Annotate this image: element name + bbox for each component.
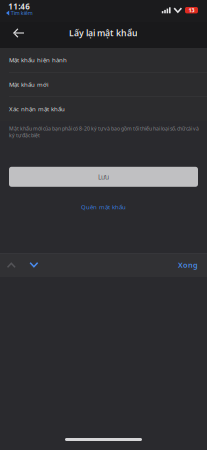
staticText: Lưu [98, 172, 109, 181]
button[interactable]: Previous field [0, 254, 23, 276]
button[interactable]: Lưu [9, 167, 198, 187]
staticText: Xong [178, 260, 198, 270]
button[interactable]: Xong [169, 252, 207, 278]
staticText: 11:46 [8, 1, 30, 12]
staticText: Mật khẩu hiện hành [9, 56, 67, 64]
button[interactable]: Mật khẩu mới [0, 72, 207, 96]
button[interactable]: Quên mật khẩu [71, 198, 136, 216]
button[interactable]: Mật khẩu hiện hành [0, 48, 207, 72]
staticText: Xác nhận mật khẩu [9, 105, 65, 113]
staticText: Tìm kiếm [11, 9, 33, 17]
staticText: 13 [188, 7, 194, 14]
staticText: Quên mật khẩu [81, 203, 126, 211]
button[interactable]: Xác nhận mật khẩu [0, 97, 207, 121]
staticText: Mật khẩu mới [9, 80, 49, 89]
button[interactable]: Back [0, 22, 33, 44]
button[interactable]: Next field [23, 254, 45, 276]
staticText: Mật khẩu mới của bạn phải có 8-20 ký tự … [9, 125, 199, 139]
staticText: Lấy lại mật khẩu [69, 27, 138, 39]
